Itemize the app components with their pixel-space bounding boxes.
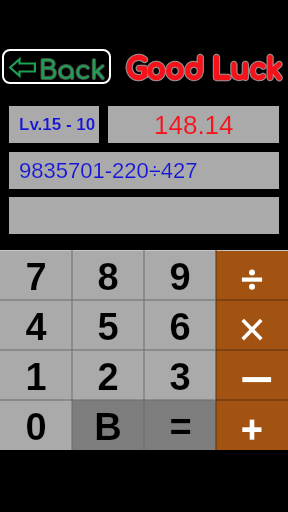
staticText: 0 [25,406,47,448]
button[interactable]: 7 [0,250,72,300]
staticText: 9835701-220÷427 [19,158,198,183]
staticText: 6 [169,306,191,348]
staticText: = [169,406,192,448]
button[interactable]: = [144,400,216,450]
staticText: Good Luck [126,54,283,85]
staticText: 5 [97,306,119,348]
staticText: Back [39,56,106,85]
staticText: 1 [25,356,47,398]
button[interactable]: Back [2,49,111,84]
button[interactable]: 2 [72,350,144,400]
button[interactable]: 1 [0,350,72,400]
button[interactable]: Subtract [216,350,288,400]
button[interactable]: 3 [144,350,216,400]
staticText: 4 [25,306,47,348]
staticText: Good Luck [126,54,283,85]
staticText: 7 [25,256,47,298]
staticText: 3 [169,356,191,398]
button[interactable]: 6 [144,300,216,350]
staticText: 9 [169,256,191,298]
staticText: B [94,406,122,448]
staticText: 8 [97,256,119,298]
button[interactable]: Multiply [216,300,288,350]
button[interactable]: B [72,400,144,450]
button[interactable]: 4 [0,300,72,350]
button[interactable]: Add [216,400,288,450]
staticText: Back [39,56,106,85]
staticText: 2 [97,356,119,398]
button[interactable]: 0 [0,400,72,450]
staticText: Lv.15 - 10 [19,115,96,134]
button[interactable]: 5 [72,300,144,350]
staticText: Good Luck [126,54,283,85]
button[interactable]: 8 [72,250,144,300]
staticText: 148.14 [154,110,234,139]
button[interactable]: Divide [216,250,288,300]
button[interactable]: Lv.15 - 10 [9,106,99,143]
button[interactable]: 9 [144,250,216,300]
